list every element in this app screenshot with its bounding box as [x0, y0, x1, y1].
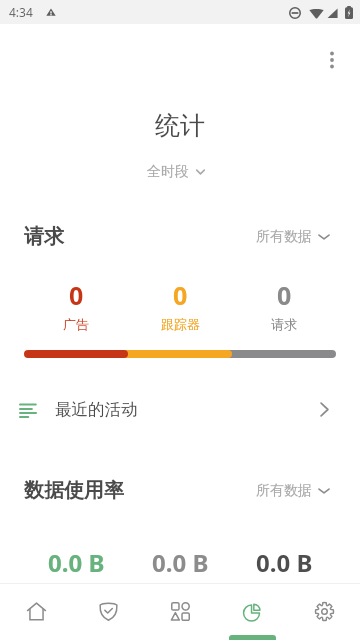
button[interactable]: Statistics — [216, 584, 288, 640]
staticText: 广告 — [63, 316, 89, 332]
staticText: 请求 — [271, 316, 297, 332]
staticText: 统计 — [0, 110, 360, 141]
button[interactable]: 所有数据 — [256, 228, 330, 246]
button[interactable]: 全时段 — [0, 163, 356, 181]
button[interactable]: Settings — [288, 584, 360, 640]
staticText: 0.0 B — [256, 546, 313, 579]
staticText: 4:34 — [9, 4, 33, 20]
staticText: 0 — [173, 278, 188, 312]
staticText: 跟踪器 — [161, 316, 200, 332]
staticText: 请求 — [24, 224, 64, 249]
button[interactable]: 所有数据 — [256, 482, 330, 500]
staticText: 所有数据 — [256, 228, 312, 246]
button[interactable]: Home — [0, 584, 72, 640]
staticText: 数据使用率 — [24, 478, 124, 503]
staticText: 0.0 B — [48, 546, 105, 579]
staticText: 最近的活动 — [55, 399, 138, 420]
button[interactable]: Apps — [144, 584, 216, 640]
staticText: 0 — [277, 278, 292, 312]
button[interactable]: 最近的活动 — [0, 385, 360, 433]
button[interactable]: More options — [310, 38, 354, 82]
staticText: 全时段 — [147, 163, 189, 181]
staticText: 所有数据 — [256, 482, 312, 500]
button[interactable]: Protection — [72, 584, 144, 640]
staticText: 0.0 B — [152, 546, 209, 579]
staticText: 0 — [69, 278, 84, 312]
